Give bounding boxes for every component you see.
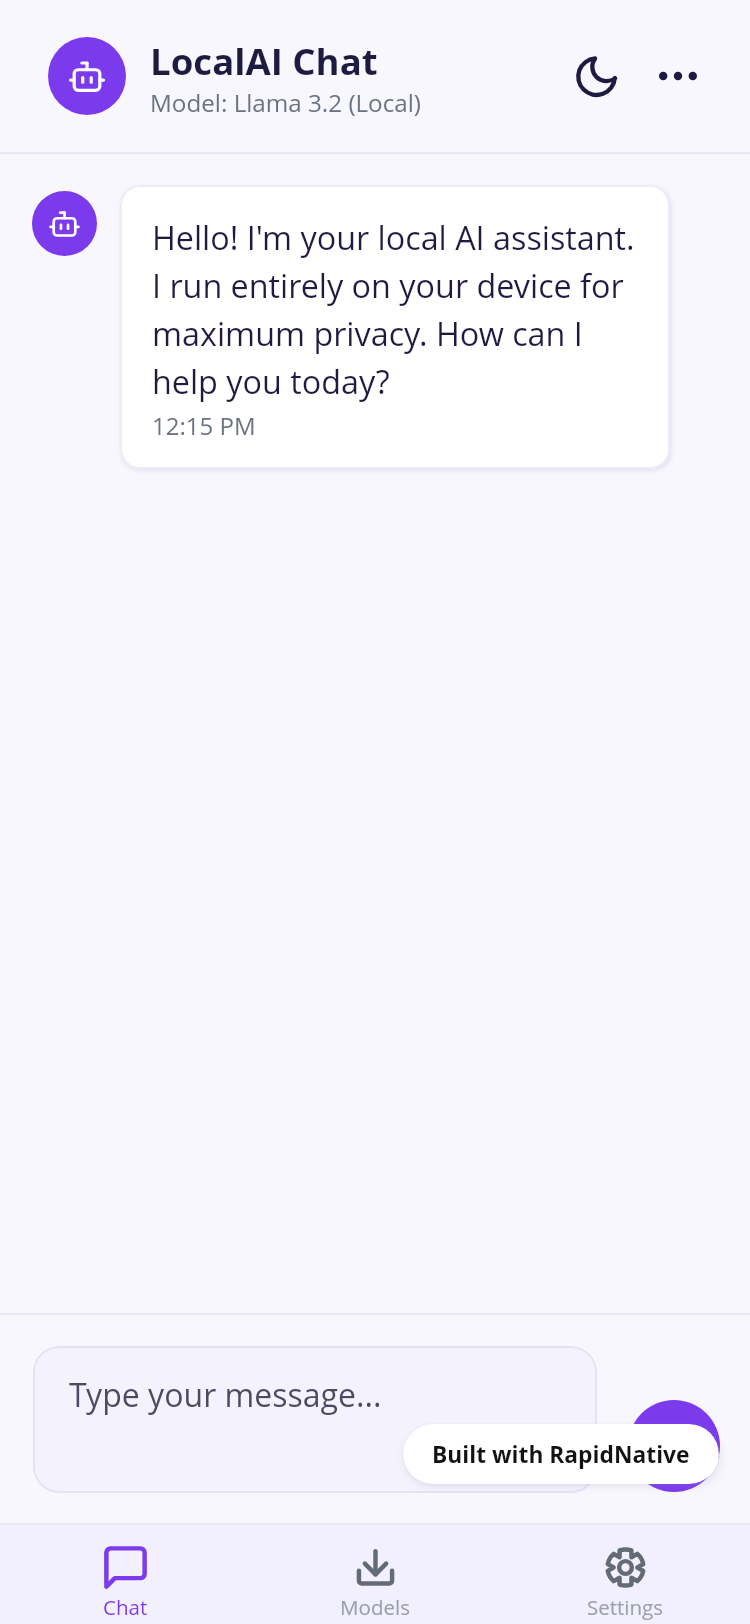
staticText: 12:15 PM: [152, 409, 256, 442]
staticText: Built with RapidNative: [432, 1439, 690, 1470]
button[interactable]: Type your message...: [33, 1346, 597, 1493]
staticText: Settings: [587, 1593, 664, 1621]
button[interactable]: Models: [250, 1525, 500, 1621]
button[interactable]: Chat: [0, 1525, 250, 1621]
staticText: Hello! I'm your local AI assistant. I ru…: [152, 215, 638, 403]
staticText: Chat: [103, 1593, 148, 1621]
staticText: Model: Llama 3.2 (Local): [150, 86, 421, 119]
button[interactable]: More options: [647, 45, 709, 107]
button[interactable]: Settings: [500, 1525, 750, 1621]
staticText: Models: [340, 1593, 410, 1621]
button[interactable]: Dark mode: [565, 45, 627, 107]
staticText: LocalAI Chat: [150, 36, 378, 86]
button[interactable]: Built with RapidNative: [403, 1424, 719, 1484]
staticText: Type your message...: [69, 1373, 382, 1417]
button[interactable]: Send: [628, 1400, 720, 1492]
